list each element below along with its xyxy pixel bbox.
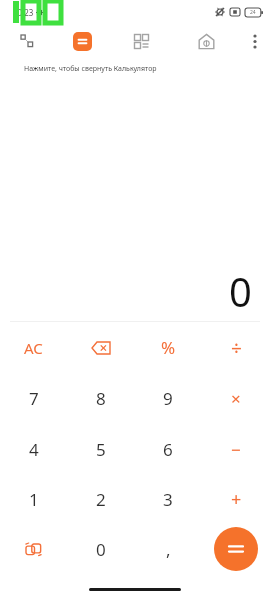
button[interactable]: AC <box>0 322 67 373</box>
staticText: 5 <box>96 438 106 461</box>
staticText: × <box>231 387 241 410</box>
button[interactable]: 4 <box>0 424 67 474</box>
staticText: Нажмите, чтобы свернуть Калькулятор <box>24 64 157 74</box>
staticText: % <box>161 336 176 359</box>
button[interactable]: − <box>202 424 270 474</box>
staticText: 9 <box>163 387 173 410</box>
button[interactable]: Backspace <box>67 322 134 373</box>
button[interactable]: 9 <box>134 373 202 424</box>
button[interactable]: 2 <box>67 474 134 524</box>
staticText: 8 <box>96 387 106 410</box>
button[interactable]: History <box>0 524 67 574</box>
staticText: , <box>166 538 171 561</box>
staticText: 10:23 <box>13 7 34 18</box>
button[interactable]: 7 <box>0 373 67 424</box>
button[interactable]: × <box>202 373 270 424</box>
staticText: + <box>231 487 242 512</box>
button[interactable]: Equals <box>214 527 258 571</box>
staticText: 1 <box>29 488 39 511</box>
staticText: 24 <box>250 9 256 16</box>
button[interactable]: 6 <box>134 424 202 474</box>
staticText: 2 <box>96 488 106 511</box>
button[interactable]: 1 <box>0 474 67 524</box>
button[interactable]: Collapse calculator <box>0 24 54 58</box>
button[interactable]: + <box>202 474 270 524</box>
button[interactable]: More options <box>240 24 270 58</box>
staticText: 7 <box>29 387 39 410</box>
staticText: 0 <box>96 538 106 561</box>
staticText: AC <box>24 338 43 358</box>
staticText: ÷ <box>231 335 242 361</box>
button[interactable]: ÷ <box>202 322 270 373</box>
staticText: 4 <box>29 438 39 461</box>
button[interactable]: Mortgage <box>172 24 240 58</box>
button[interactable]: , <box>134 524 202 574</box>
staticText: 0 <box>229 264 252 318</box>
staticText: 6 <box>163 438 173 461</box>
button[interactable]: 8 <box>67 373 134 424</box>
staticText: 3 <box>163 488 173 511</box>
button[interactable]: Нажмите, чтобы свернуть Калькулятор <box>10 55 162 83</box>
button[interactable]: Calculator <box>54 24 110 58</box>
button[interactable]: % <box>134 322 202 373</box>
button[interactable]: 3 <box>134 474 202 524</box>
button[interactable]: Converter <box>110 24 172 58</box>
button[interactable]: 0 <box>67 524 134 574</box>
staticText: − <box>231 438 241 461</box>
button[interactable]: 5 <box>67 424 134 474</box>
